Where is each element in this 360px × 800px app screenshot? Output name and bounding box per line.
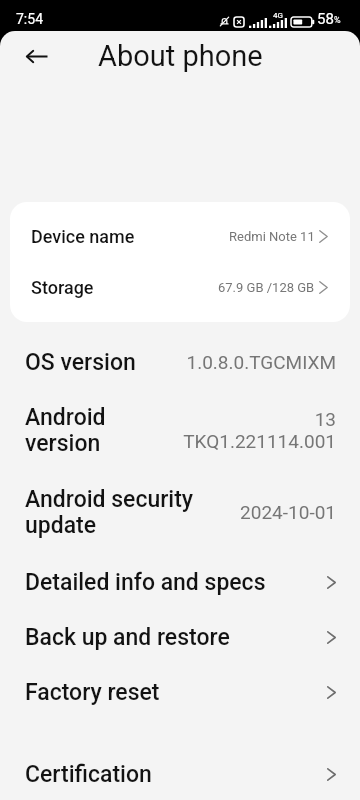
button[interactable]: Certification	[0, 747, 360, 800]
staticText: 13	[314, 408, 336, 430]
button[interactable]: Android security update	[0, 469, 360, 554]
button[interactable]: Detailed info and specs	[0, 554, 360, 610]
button[interactable]: OS version	[0, 333, 360, 391]
button[interactable]: Device name	[10, 211, 350, 262]
staticText: Android version	[25, 404, 183, 456]
staticText: %	[334, 15, 341, 26]
staticText: 4G	[273, 11, 283, 20]
staticText: Back up and restore	[25, 624, 327, 651]
staticText: 7:54	[16, 11, 43, 27]
staticText: Certification	[25, 761, 327, 788]
button[interactable]: Storage	[10, 262, 350, 313]
button[interactable]: Android version	[0, 391, 360, 469]
staticText: Detailed info and specs	[25, 569, 327, 596]
button[interactable]: Back	[15, 34, 59, 78]
staticText: Storage	[31, 277, 94, 298]
button[interactable]: Factory reset	[0, 665, 360, 720]
staticText: Factory reset	[25, 679, 327, 706]
staticText: 58	[317, 10, 334, 28]
staticText: OS version	[25, 349, 186, 376]
staticText: About phone	[98, 39, 263, 73]
staticText: Redmi Note 11	[229, 229, 315, 244]
button[interactable]: Back up and restore	[0, 610, 360, 665]
staticText: TKQ1.221114.001	[183, 430, 336, 452]
staticText: 2024-10-01	[240, 501, 336, 523]
staticText: 67.9 GB /128 GB	[218, 280, 315, 295]
staticText: 1.0.8.0.TGCMIXM	[186, 351, 336, 373]
staticText: Device name	[31, 226, 135, 247]
staticText: Android security update	[25, 486, 240, 538]
